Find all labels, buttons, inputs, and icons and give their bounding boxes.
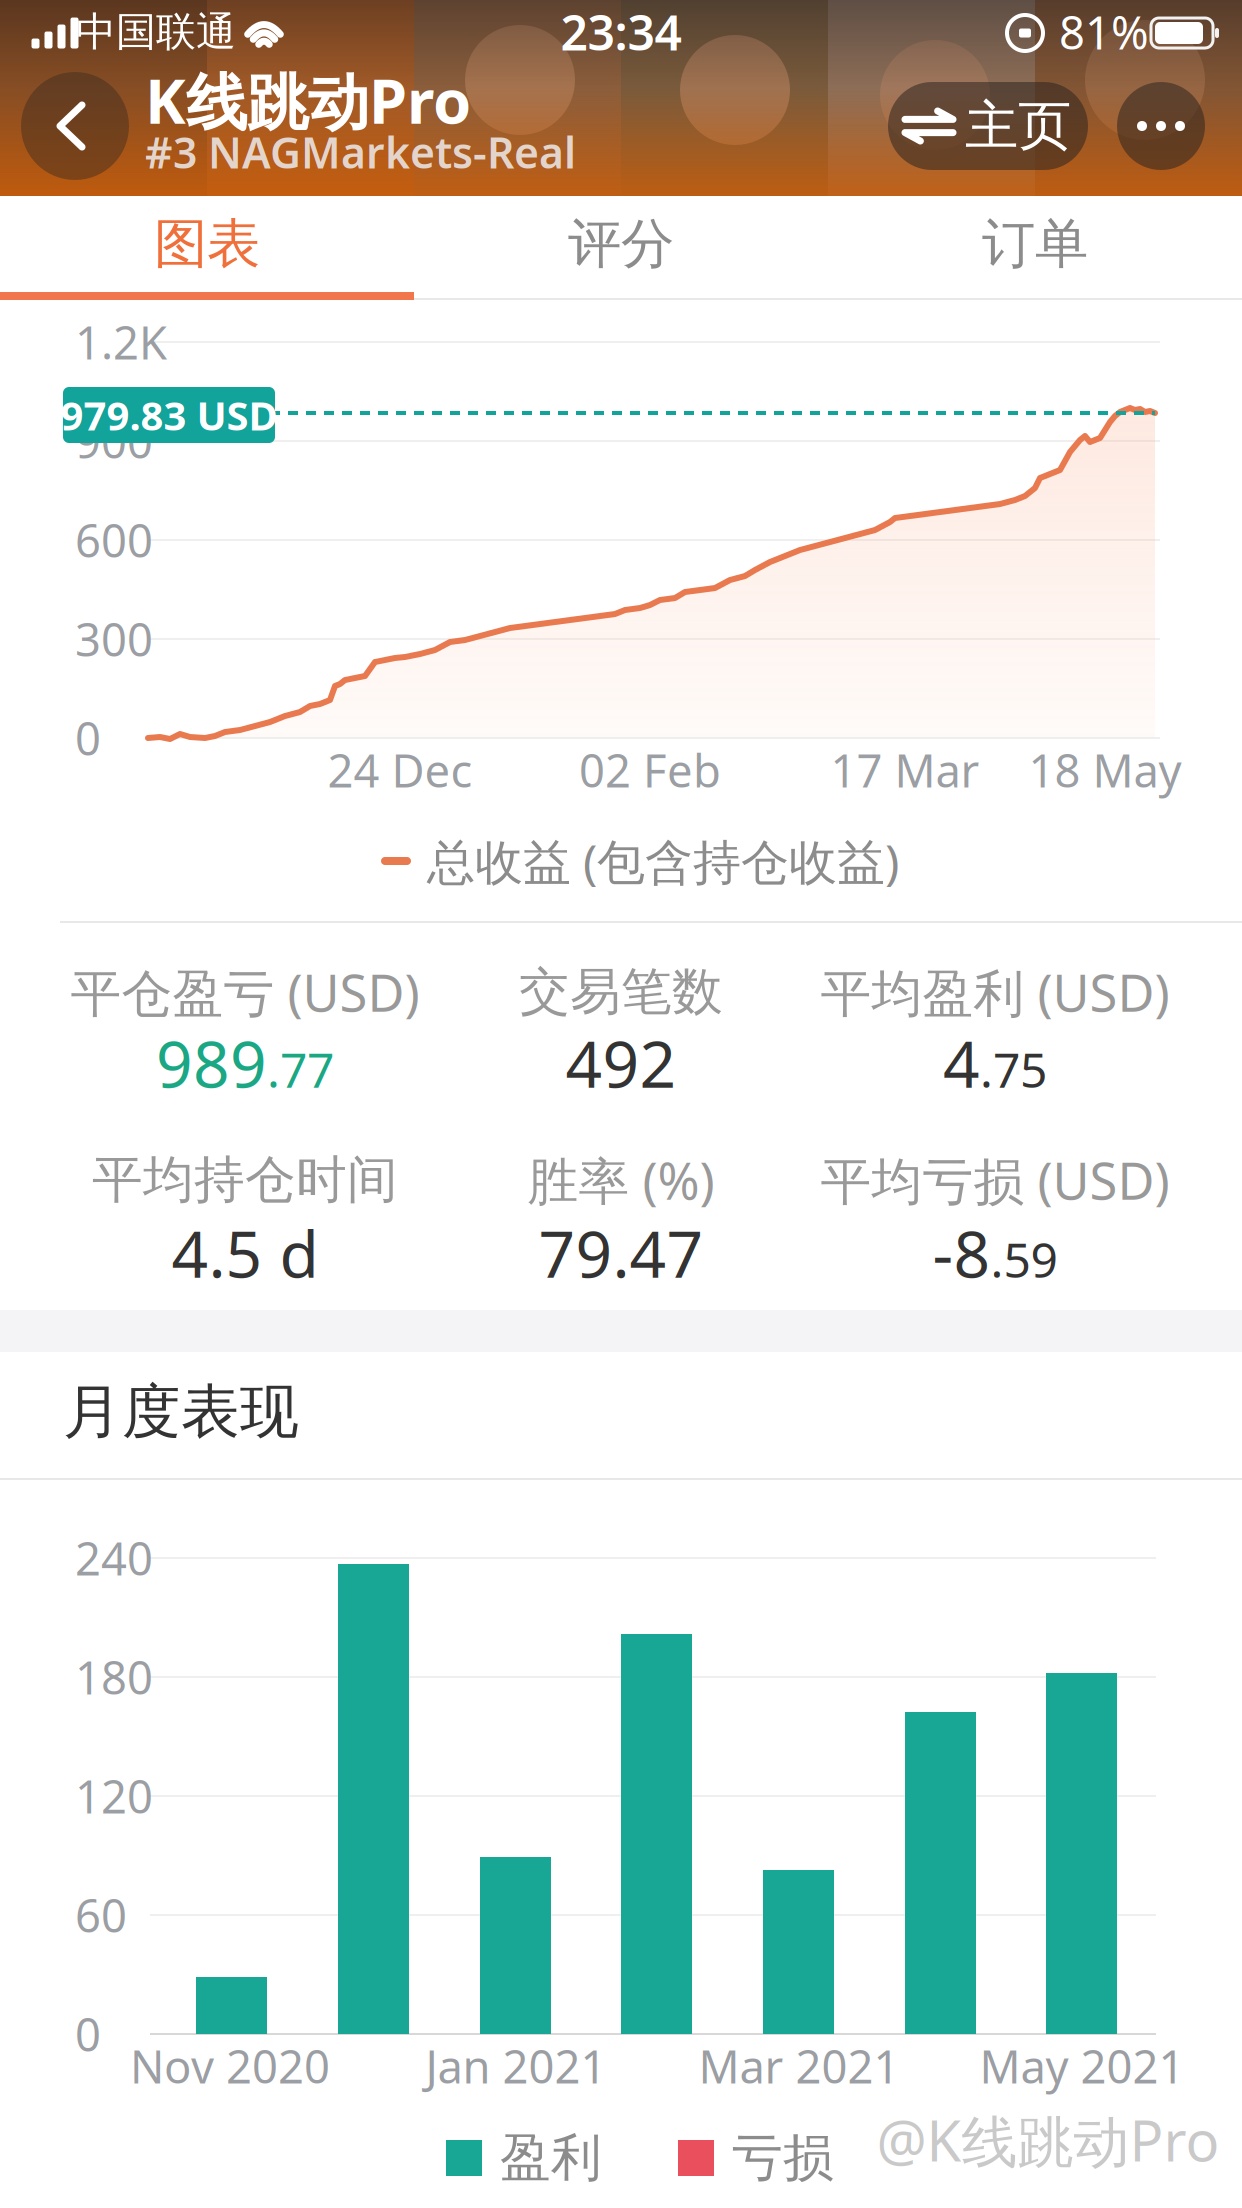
staticText: 交易笔数 bbox=[519, 961, 723, 1023]
staticText: 图表 bbox=[154, 211, 260, 277]
staticText: 18 May bbox=[1028, 740, 1181, 800]
staticText: 492 bbox=[565, 1020, 676, 1105]
staticText: -8 bbox=[932, 1210, 990, 1295]
staticText: 总收益 (包含持仓收益) bbox=[427, 829, 899, 893]
staticText: 盈利 bbox=[500, 2127, 602, 2189]
staticText: 评分 bbox=[568, 211, 674, 277]
button[interactable]: 图表 bbox=[0, 196, 414, 292]
staticText: 979.83 USD bbox=[60, 388, 277, 441]
staticText: 79.47 bbox=[538, 1210, 703, 1295]
staticText: Mar 2021 bbox=[698, 2036, 899, 2096]
staticText: 240 bbox=[75, 1528, 153, 1588]
staticText: 平均持仓时间 bbox=[92, 1149, 398, 1211]
staticText: 0 bbox=[75, 708, 101, 768]
button[interactable]: 主页 bbox=[888, 82, 1088, 170]
staticText: 23:34 bbox=[560, 0, 681, 64]
staticText: 02 Feb bbox=[579, 740, 721, 800]
staticText: 平均盈利 (USD) bbox=[820, 958, 1169, 1026]
staticText: K线跳动Pro bbox=[145, 59, 471, 141]
staticText: 平均亏损 (USD) bbox=[820, 1146, 1169, 1214]
staticText: 81% bbox=[1059, 2, 1149, 62]
button[interactable]: 订单 bbox=[828, 196, 1242, 292]
staticText: 月度表现 bbox=[63, 1376, 299, 1448]
staticText: 4.5 d bbox=[171, 1210, 318, 1295]
staticText: Jan 2021 bbox=[425, 2036, 606, 2096]
staticText: 4 bbox=[943, 1020, 980, 1105]
staticText: 300 bbox=[75, 609, 153, 669]
staticText: 平仓盈亏 (USD) bbox=[70, 958, 419, 1026]
button[interactable]: Back bbox=[21, 72, 129, 180]
staticText: 订单 bbox=[982, 211, 1088, 277]
staticText: 亏损 bbox=[732, 2127, 834, 2189]
button[interactable]: More bbox=[1117, 82, 1205, 170]
staticText: 989 bbox=[156, 1020, 267, 1105]
staticText: 主页 bbox=[965, 93, 1071, 159]
staticText: 600 bbox=[75, 510, 153, 570]
button[interactable]: 评分 bbox=[414, 196, 828, 292]
staticText: .59 bbox=[990, 1227, 1057, 1291]
staticText: 中国联通 bbox=[76, 7, 236, 56]
staticText: 900 bbox=[75, 411, 153, 471]
staticText: 0 bbox=[75, 2004, 101, 2064]
staticText: Nov 2020 bbox=[130, 2036, 330, 2096]
staticText: 120 bbox=[75, 1766, 153, 1826]
staticText: May 2021 bbox=[979, 2036, 1184, 2096]
staticText: 24 Dec bbox=[327, 740, 472, 800]
staticText: .75 bbox=[980, 1037, 1047, 1101]
staticText: 60 bbox=[75, 1885, 127, 1945]
staticText: .77 bbox=[267, 1037, 334, 1101]
staticText: 胜率 (%) bbox=[527, 1146, 714, 1214]
staticText: #3 NAGMarkets-Real bbox=[145, 124, 576, 180]
staticText: 180 bbox=[75, 1647, 153, 1707]
staticText: 1.2K bbox=[75, 312, 167, 372]
staticText: 17 Mar bbox=[830, 740, 979, 800]
staticText: @K线跳动Pro bbox=[876, 2103, 1219, 2177]
